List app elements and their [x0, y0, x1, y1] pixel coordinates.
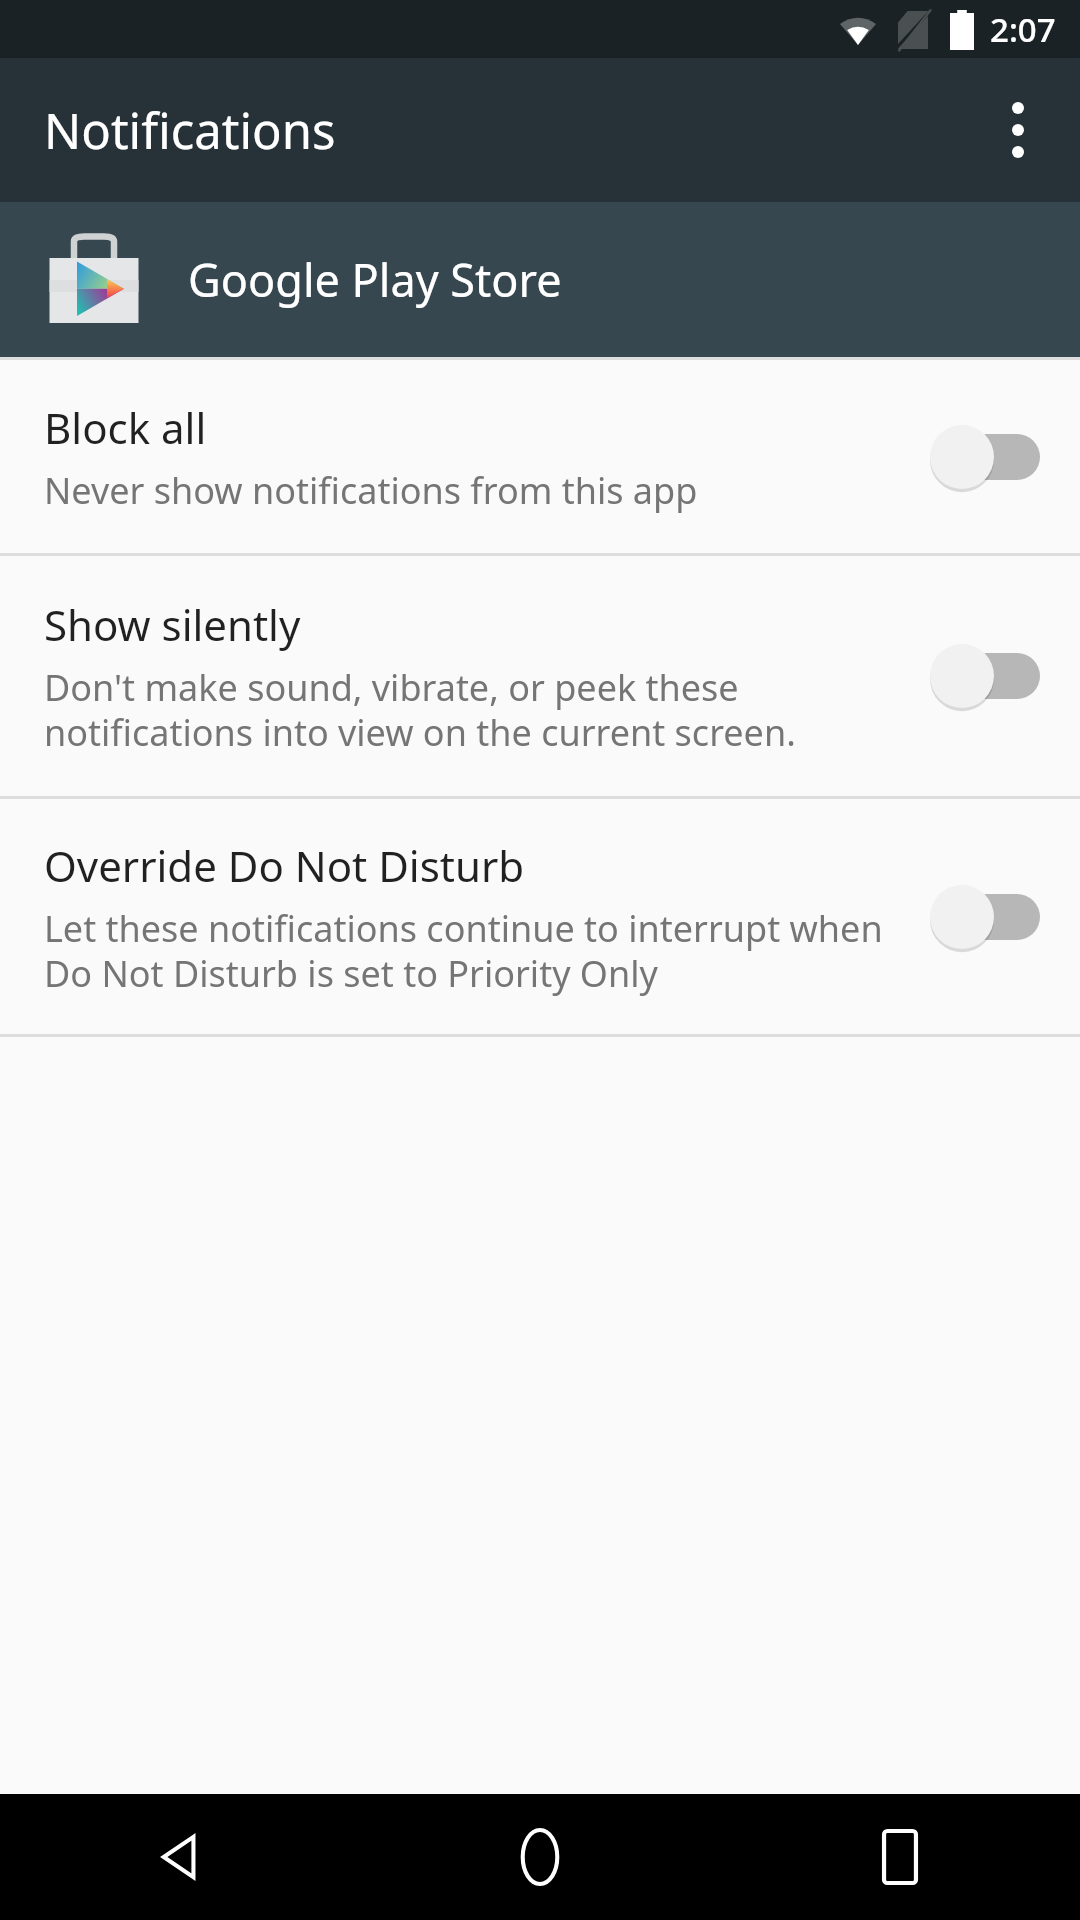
staticText: 2:07 [990, 7, 1056, 52]
staticText: Don't make sound, vibrate, or peek these… [44, 663, 796, 756]
staticText: Show silently [44, 596, 301, 653]
button[interactable]: Home [360, 1794, 720, 1920]
staticText: Never show notifications from this app [44, 466, 698, 515]
staticText: Notifications [44, 97, 336, 164]
button[interactable]: Toggle [920, 412, 1050, 502]
button[interactable]: Override Do Not Disturb [0, 799, 1080, 1034]
staticText: Block all [44, 399, 207, 456]
button[interactable]: Block all [0, 360, 1080, 553]
button[interactable]: Show silently [0, 556, 1080, 796]
button[interactable]: Back [0, 1794, 360, 1920]
button[interactable]: Toggle [920, 631, 1050, 721]
staticText: Override Do Not Disturb [44, 837, 525, 894]
staticText: Google Play Store [188, 249, 562, 310]
button[interactable]: More options [970, 82, 1066, 178]
button[interactable]: Google Play Store [0, 202, 1080, 357]
button[interactable]: Toggle [920, 872, 1050, 962]
button[interactable]: Recent apps [720, 1794, 1080, 1920]
staticText: Let these notifications continue to inte… [44, 904, 883, 997]
